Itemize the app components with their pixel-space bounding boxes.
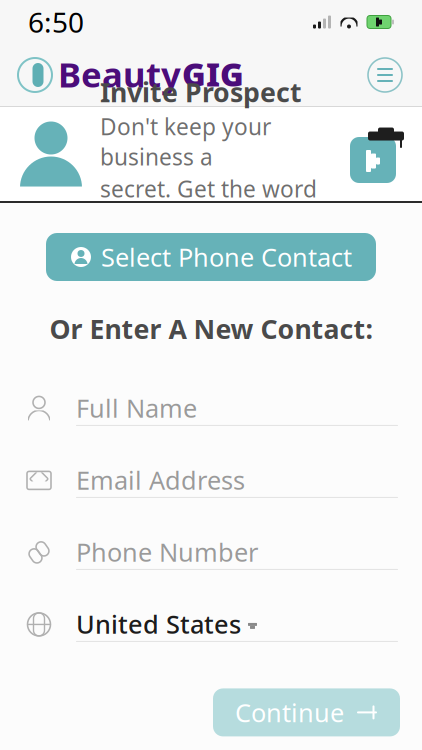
staticText: Don't keep your business a <box>100 111 271 172</box>
button[interactable]: Select Phone Contact <box>46 233 376 281</box>
staticText: Phone Number <box>76 535 258 569</box>
staticText: 6:50 <box>28 3 84 41</box>
staticText: Full Name <box>76 391 197 425</box>
staticText: Invite Prospect <box>100 74 302 109</box>
button[interactable]: Continue <box>213 688 400 736</box>
staticText: Select Phone Contact <box>101 240 352 274</box>
staticText: GIG <box>182 53 244 95</box>
button[interactable]: United States <box>0 588 422 660</box>
staticText: United States <box>76 607 241 641</box>
button[interactable]: Menu <box>362 52 408 98</box>
staticText: Beauty <box>58 51 181 97</box>
staticText: secret. Get the word out! <box>100 174 317 234</box>
staticText: Email Address <box>76 463 245 497</box>
button[interactable]: Invite Prospect <box>0 107 422 201</box>
staticText: Or Enter A New Contact: <box>49 311 372 346</box>
staticText: Continue <box>235 696 344 729</box>
